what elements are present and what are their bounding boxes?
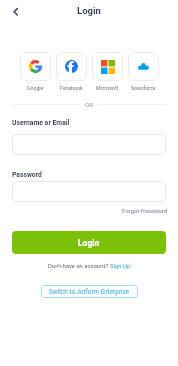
button[interactable] bbox=[12, 134, 166, 155]
button[interactable]: Back bbox=[8, 4, 24, 20]
staticText: Salesforce bbox=[131, 85, 156, 91]
staticText: Google bbox=[27, 85, 44, 91]
button[interactable]: Forgot Password bbox=[122, 207, 168, 214]
staticText: Login bbox=[78, 238, 100, 248]
button[interactable]: Switch to Jotform Enterprise bbox=[41, 285, 138, 298]
staticText: Forgot Password bbox=[122, 207, 168, 214]
button[interactable]: Salesforce bbox=[128, 52, 159, 91]
staticText: Username or Email bbox=[12, 119, 70, 127]
staticText: Switch to Jotform Enterprise bbox=[49, 288, 130, 295]
button[interactable]: Login bbox=[12, 231, 166, 254]
button[interactable]: Google bbox=[20, 52, 51, 91]
staticText: OR bbox=[85, 101, 93, 108]
staticText: Don't have an account? bbox=[48, 263, 110, 270]
staticText: Facebook bbox=[60, 85, 83, 91]
button[interactable] bbox=[12, 181, 166, 202]
staticText: Login bbox=[0, 5, 178, 16]
staticText: Sign Up bbox=[110, 263, 131, 270]
button[interactable]: Sign Up bbox=[110, 263, 131, 270]
staticText: Password bbox=[12, 171, 42, 179]
button[interactable]: Microsoft bbox=[92, 52, 123, 91]
staticText: Microsoft bbox=[96, 85, 119, 91]
button[interactable]: Facebook bbox=[56, 52, 87, 91]
